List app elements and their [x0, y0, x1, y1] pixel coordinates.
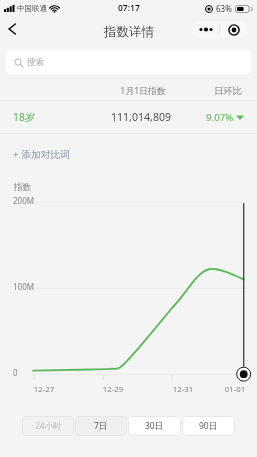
staticText: 日环比: [213, 85, 243, 97]
staticText: 30日: [145, 420, 164, 432]
staticText: 搜索: [27, 57, 44, 68]
staticText: 24小时: [35, 420, 62, 432]
staticText: 中国联通: [17, 4, 47, 13]
staticText: 63%: [216, 3, 232, 14]
button[interactable]: 18岁: [0, 101, 257, 133]
staticText: 200M: [13, 195, 34, 206]
button[interactable]: 24小时: [22, 416, 74, 436]
staticText: 指数: [14, 182, 32, 193]
staticText: 指数详情: [104, 24, 154, 40]
staticText: 0: [13, 367, 18, 378]
staticText: 1月1日指数: [118, 85, 168, 97]
staticText: 90日: [199, 420, 218, 432]
button[interactable]: 搜索: [6, 50, 251, 74]
staticText: 111,014,809: [106, 110, 176, 124]
staticText: 01-01: [220, 384, 250, 395]
staticText: + 添加对比词: [13, 148, 71, 161]
button[interactable]: More options: [192, 21, 219, 38]
button[interactable]: 90日: [182, 416, 235, 436]
button[interactable]: Back: [0, 16, 24, 42]
staticText: 18岁: [13, 110, 36, 124]
staticText: 12-31: [168, 384, 198, 395]
staticText: 7日: [94, 420, 108, 432]
button[interactable]: + 添加对比词: [0, 143, 257, 165]
button[interactable]: Close: [220, 21, 248, 38]
staticText: 9.07%: [206, 111, 234, 124]
staticText: 12-29: [98, 384, 128, 395]
button[interactable]: 7日: [75, 416, 127, 436]
staticText: 12-27: [29, 384, 59, 395]
staticText: 100M: [13, 281, 34, 292]
staticText: 07:17: [118, 2, 140, 14]
button[interactable]: 30日: [128, 416, 181, 436]
